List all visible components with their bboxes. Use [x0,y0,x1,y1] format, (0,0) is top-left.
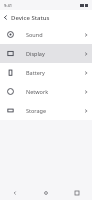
button[interactable]: Network [0,82,92,101]
staticText: Display [26,50,45,57]
button[interactable]: Battery [0,63,92,82]
button[interactable]: Sound [0,25,92,44]
button[interactable]: Recents [61,186,92,200]
staticText: Storage [26,107,47,114]
staticText: 9:41 [4,3,12,8]
staticText: Battery [26,69,45,76]
staticText: Sound [26,31,43,38]
button[interactable]: Display [0,44,92,63]
button[interactable]: Back [0,12,11,23]
staticText: Device Status [11,14,50,22]
button[interactable]: Back [0,186,30,200]
button[interactable]: Storage [0,101,92,120]
staticText: Network [26,88,49,95]
button[interactable]: Home [30,186,61,200]
